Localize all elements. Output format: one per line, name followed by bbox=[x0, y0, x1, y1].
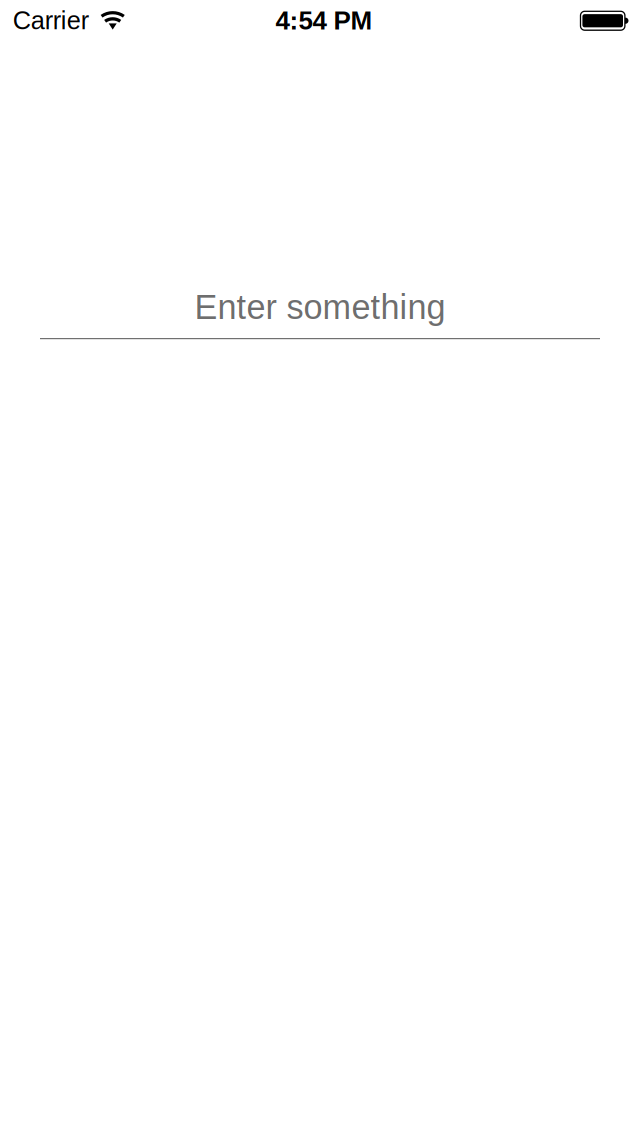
staticText: 4:54 PM bbox=[275, 6, 372, 35]
button[interactable]: Enter something bbox=[40, 283, 600, 339]
staticText: Carrier bbox=[13, 6, 89, 34]
staticText: Enter something bbox=[194, 288, 445, 326]
